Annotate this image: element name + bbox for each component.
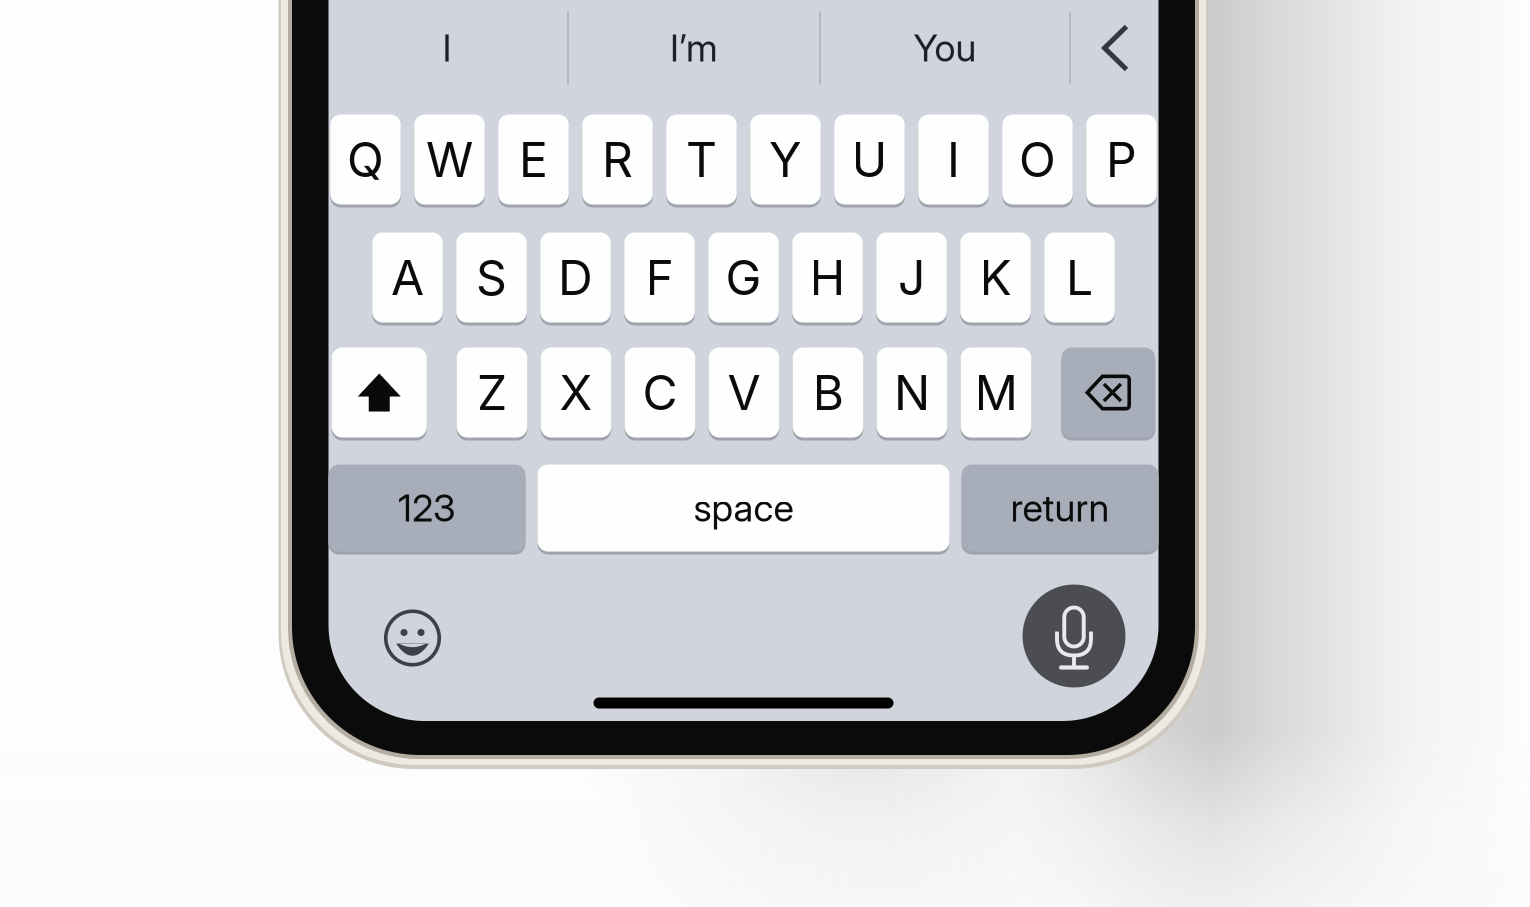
staticText: Y [769, 130, 802, 189]
button[interactable]: L [1044, 232, 1115, 322]
staticText: P [1106, 130, 1137, 189]
button[interactable]: I [918, 114, 989, 204]
button[interactable]: S [456, 232, 527, 322]
staticText: C [642, 363, 677, 422]
staticText: I [947, 130, 960, 189]
button[interactable]: T [666, 114, 737, 204]
button[interactable]: Dictation [1022, 584, 1125, 687]
staticText: S [476, 248, 507, 307]
button[interactable]: Delete [1061, 347, 1155, 437]
staticText: B [812, 363, 843, 422]
button[interactable]: You [821, 0, 1069, 96]
button[interactable]: space [537, 464, 949, 551]
button[interactable]: Emoji keyboard [384, 609, 441, 666]
staticText: I’m [670, 25, 718, 71]
staticText: W [426, 130, 473, 189]
button[interactable]: A [372, 232, 443, 322]
staticText: L [1066, 248, 1093, 307]
button[interactable]: G [708, 232, 779, 322]
staticText: K [979, 248, 1011, 307]
staticText: V [727, 363, 760, 422]
staticText: Q [347, 130, 384, 189]
button[interactable]: H [792, 232, 863, 322]
staticText: I [442, 25, 451, 71]
staticText: G [725, 248, 761, 307]
staticText: A [391, 248, 424, 307]
staticText: J [898, 248, 925, 307]
staticText: U [851, 130, 887, 189]
button[interactable]: M [961, 347, 1031, 437]
staticText: space [693, 485, 793, 531]
staticText: T [686, 130, 717, 189]
button[interactable]: C [625, 347, 695, 437]
button[interactable]: E [498, 114, 569, 204]
staticText: H [809, 248, 845, 307]
button[interactable]: W [414, 114, 485, 204]
button[interactable]: Q [330, 114, 401, 204]
button[interactable]: U [834, 114, 905, 204]
staticText: Z [477, 363, 507, 422]
button[interactable]: return [961, 464, 1158, 551]
staticText: N [894, 363, 930, 422]
button[interactable]: F [624, 232, 695, 322]
staticText: 123 [398, 485, 456, 531]
button[interactable]: B [793, 347, 863, 437]
button[interactable]: I’m [569, 0, 819, 96]
staticText: X [559, 363, 592, 422]
button[interactable]: X [541, 347, 611, 437]
button[interactable]: Y [750, 114, 821, 204]
staticText: E [519, 130, 548, 189]
button[interactable]: N [877, 347, 947, 437]
button[interactable]: I [327, 0, 567, 96]
button[interactable]: More suggestions [1071, 0, 1160, 96]
staticText: O [1019, 130, 1056, 189]
button[interactable]: R [582, 114, 653, 204]
staticText: R [602, 130, 633, 189]
button[interactable]: O [1002, 114, 1073, 204]
staticText: return [1010, 485, 1109, 531]
button[interactable]: J [876, 232, 947, 322]
button[interactable]: V [709, 347, 779, 437]
button[interactable]: K [960, 232, 1031, 322]
button[interactable]: Shift [332, 347, 427, 437]
button[interactable]: D [540, 232, 611, 322]
button[interactable]: 123 [328, 464, 525, 551]
staticText: D [558, 248, 593, 307]
button[interactable]: Z [457, 347, 527, 437]
staticText: M [974, 363, 1017, 422]
button[interactable]: P [1086, 114, 1157, 204]
staticText: F [645, 248, 673, 307]
staticText: You [913, 25, 976, 71]
